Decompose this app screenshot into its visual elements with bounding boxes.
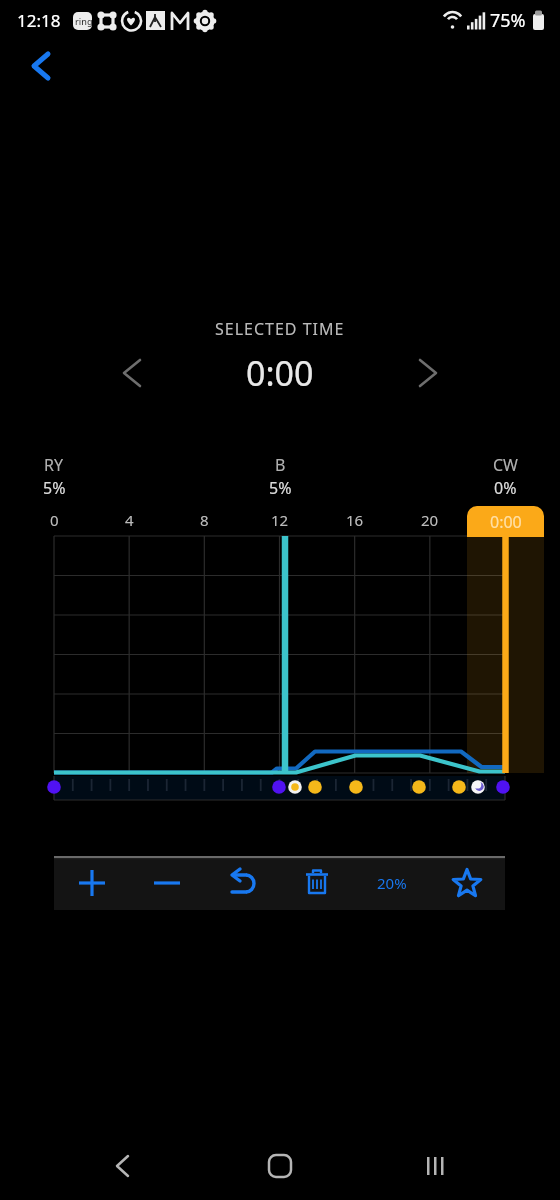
staticText: 20% xyxy=(377,873,407,893)
button[interactable]: Add xyxy=(54,856,129,910)
staticText: 4 xyxy=(125,510,134,530)
button[interactable]: Next time xyxy=(404,349,452,397)
staticText: CW xyxy=(493,454,518,476)
button[interactable]: Favorite xyxy=(429,856,504,910)
staticText: 16 xyxy=(346,510,364,530)
button[interactable]: Subtract xyxy=(129,856,204,910)
staticText: 0:00 xyxy=(490,511,522,533)
staticText: ring xyxy=(75,15,93,27)
staticText: 75% xyxy=(490,8,526,33)
staticText: 5% xyxy=(269,477,292,499)
button[interactable]: Previous time xyxy=(108,349,156,397)
staticText: B xyxy=(275,454,286,476)
staticText: 12:18 xyxy=(17,9,61,32)
staticText: RY xyxy=(44,454,64,476)
staticText: 0:00 xyxy=(246,350,314,396)
staticText: 8 xyxy=(200,510,209,530)
button[interactable]: Back xyxy=(14,40,66,92)
button[interactable]: Delete xyxy=(279,856,354,910)
button[interactable]: Undo xyxy=(204,856,279,910)
staticText: 0% xyxy=(494,477,517,499)
staticText: 12 xyxy=(271,510,289,530)
staticText: SELECTED TIME xyxy=(215,318,345,340)
staticText: 0 xyxy=(50,510,59,530)
button[interactable]: 0:00 xyxy=(467,506,544,537)
staticText: 20 xyxy=(421,510,439,530)
button[interactable]: 20% xyxy=(354,856,429,910)
staticText: 5% xyxy=(43,477,66,499)
